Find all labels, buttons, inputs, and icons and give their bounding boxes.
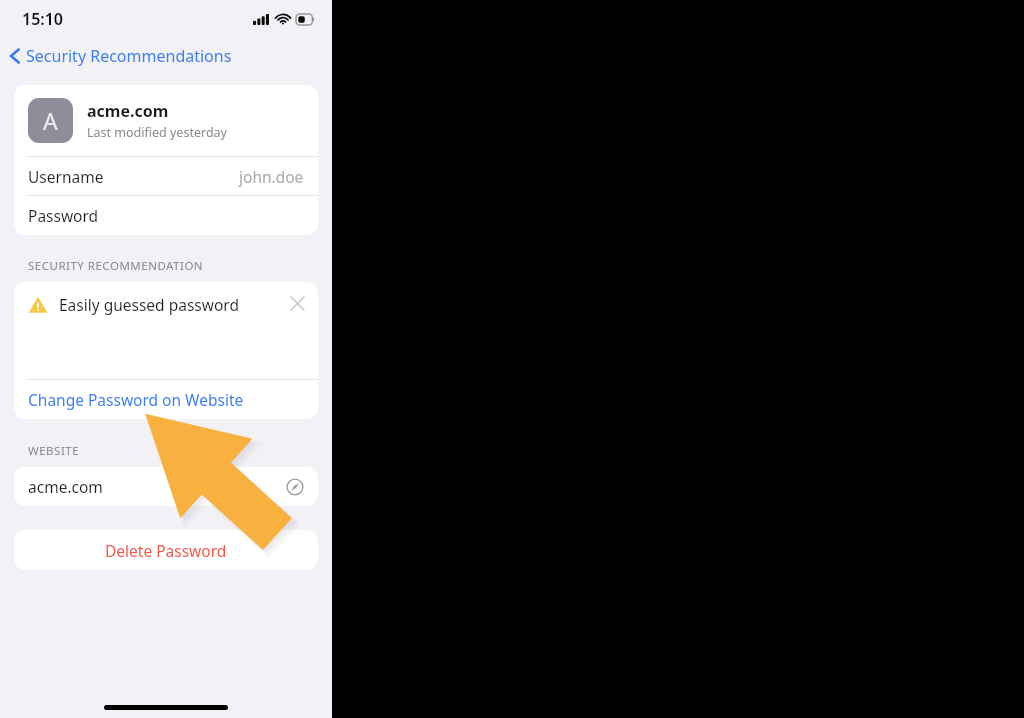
staticText: Username	[28, 166, 104, 187]
button[interactable]: Password	[14, 196, 318, 235]
button[interactable]: acme.com	[14, 467, 318, 506]
staticText: SECURITY RECOMMENDATION	[28, 258, 204, 274]
staticText: Delete Password	[105, 540, 227, 561]
button[interactable]: Username	[14, 157, 318, 195]
staticText: A	[43, 105, 58, 136]
button[interactable]: Dismiss recommendation	[282, 288, 312, 318]
staticText: Security Recommendations	[26, 45, 232, 67]
staticText: WEBSITE	[28, 443, 80, 459]
staticText: Easily guessed password	[59, 294, 239, 315]
staticText: acme.com	[87, 100, 169, 122]
button[interactable]: Delete Password	[14, 530, 318, 570]
staticText: john.doe	[239, 166, 304, 187]
button[interactable]: Open in Safari	[282, 474, 308, 500]
button[interactable]: A	[14, 85, 318, 156]
button[interactable]: Change Password on Website	[14, 380, 318, 419]
staticText: Change Password on Website	[28, 389, 244, 410]
staticText: acme.com	[28, 476, 103, 497]
staticText: 15:10	[22, 8, 64, 30]
button[interactable]: Security Recommendations	[0, 38, 332, 74]
staticText: Last modified yesterday	[87, 124, 227, 141]
staticText: Password	[28, 205, 99, 226]
